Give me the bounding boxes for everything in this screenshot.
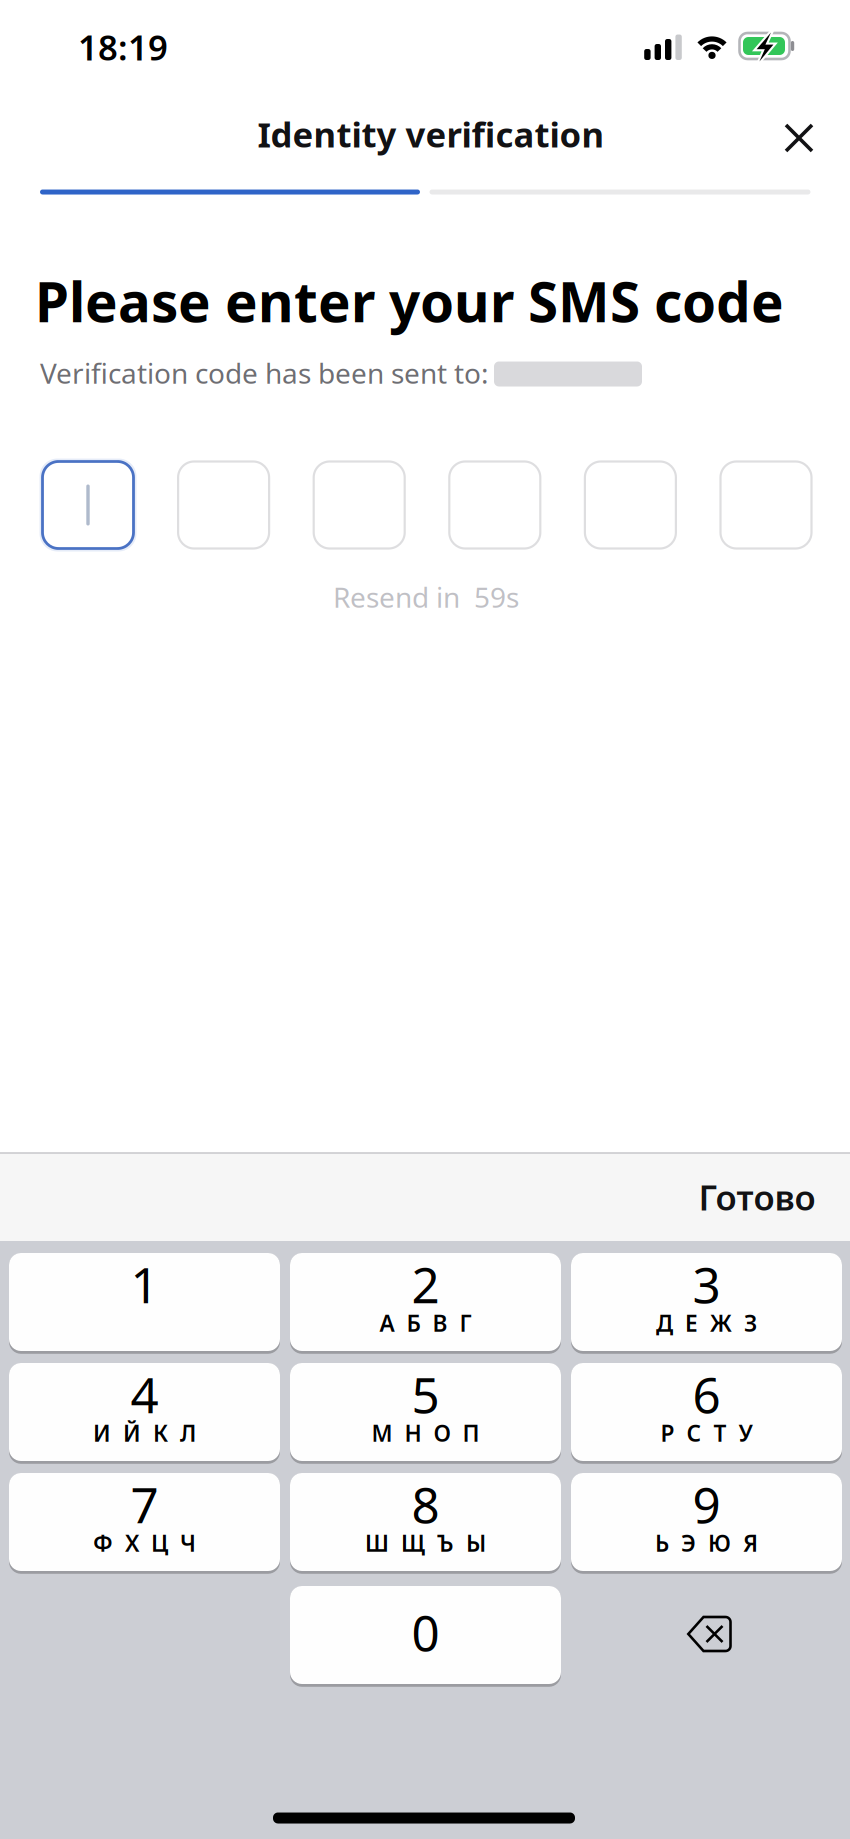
staticText: Resend in 59s: [333, 578, 519, 616]
staticText: 8: [411, 1471, 439, 1537]
staticText: 0: [411, 1599, 439, 1665]
staticText: 2: [411, 1251, 439, 1317]
staticText: Ь Э Ю Я: [655, 1528, 758, 1558]
button[interactable]: 4: [9, 1363, 280, 1461]
staticText: 4: [130, 1361, 158, 1427]
button[interactable]: 0: [290, 1586, 561, 1684]
button[interactable]: 8: [290, 1473, 561, 1571]
button[interactable]: 2: [290, 1253, 561, 1351]
button[interactable]: Delete: [574, 1585, 845, 1683]
staticText: 7: [130, 1471, 158, 1537]
staticText: 1: [130, 1251, 158, 1317]
button[interactable]: 5: [290, 1363, 561, 1461]
button[interactable]: 1: [9, 1253, 280, 1351]
staticText: А Б В Г: [379, 1308, 471, 1338]
staticText: 9: [692, 1471, 720, 1537]
button[interactable]: 6: [571, 1363, 842, 1461]
staticText: 5: [411, 1361, 439, 1427]
staticText: Verification code has been sent to:: [40, 354, 489, 392]
staticText: И Й К Л: [93, 1418, 196, 1448]
staticText: 18:19: [78, 24, 168, 70]
button[interactable]: SMS code digit 3: [314, 461, 405, 548]
button[interactable]: Close: [764, 103, 834, 173]
button[interactable]: SMS code digit 6: [720, 461, 811, 548]
staticText: Ш Щ Ъ Ы: [365, 1528, 486, 1558]
button[interactable]: SMS code digit 1: [42, 461, 133, 548]
button[interactable]: 3: [571, 1253, 842, 1351]
staticText: Please enter your SMS code: [35, 265, 784, 337]
button[interactable]: 9: [571, 1473, 842, 1571]
staticText: Д Е Ж З: [656, 1308, 757, 1338]
staticText: Identity verification: [257, 111, 604, 157]
button[interactable]: Готово: [682, 1162, 831, 1232]
staticText: Готово: [698, 1174, 815, 1220]
button[interactable]: SMS code digit 5: [585, 461, 676, 548]
button[interactable]: 7: [9, 1473, 280, 1571]
staticText: М Н О П: [371, 1418, 479, 1448]
staticText: 3: [692, 1251, 720, 1317]
button[interactable]: SMS code digit 2: [178, 461, 269, 548]
button[interactable]: SMS code digit 4: [449, 461, 540, 548]
staticText: 6: [692, 1361, 720, 1427]
staticText: Ф Х Ц Ч: [93, 1528, 196, 1558]
staticText: Р С Т У: [660, 1418, 752, 1448]
